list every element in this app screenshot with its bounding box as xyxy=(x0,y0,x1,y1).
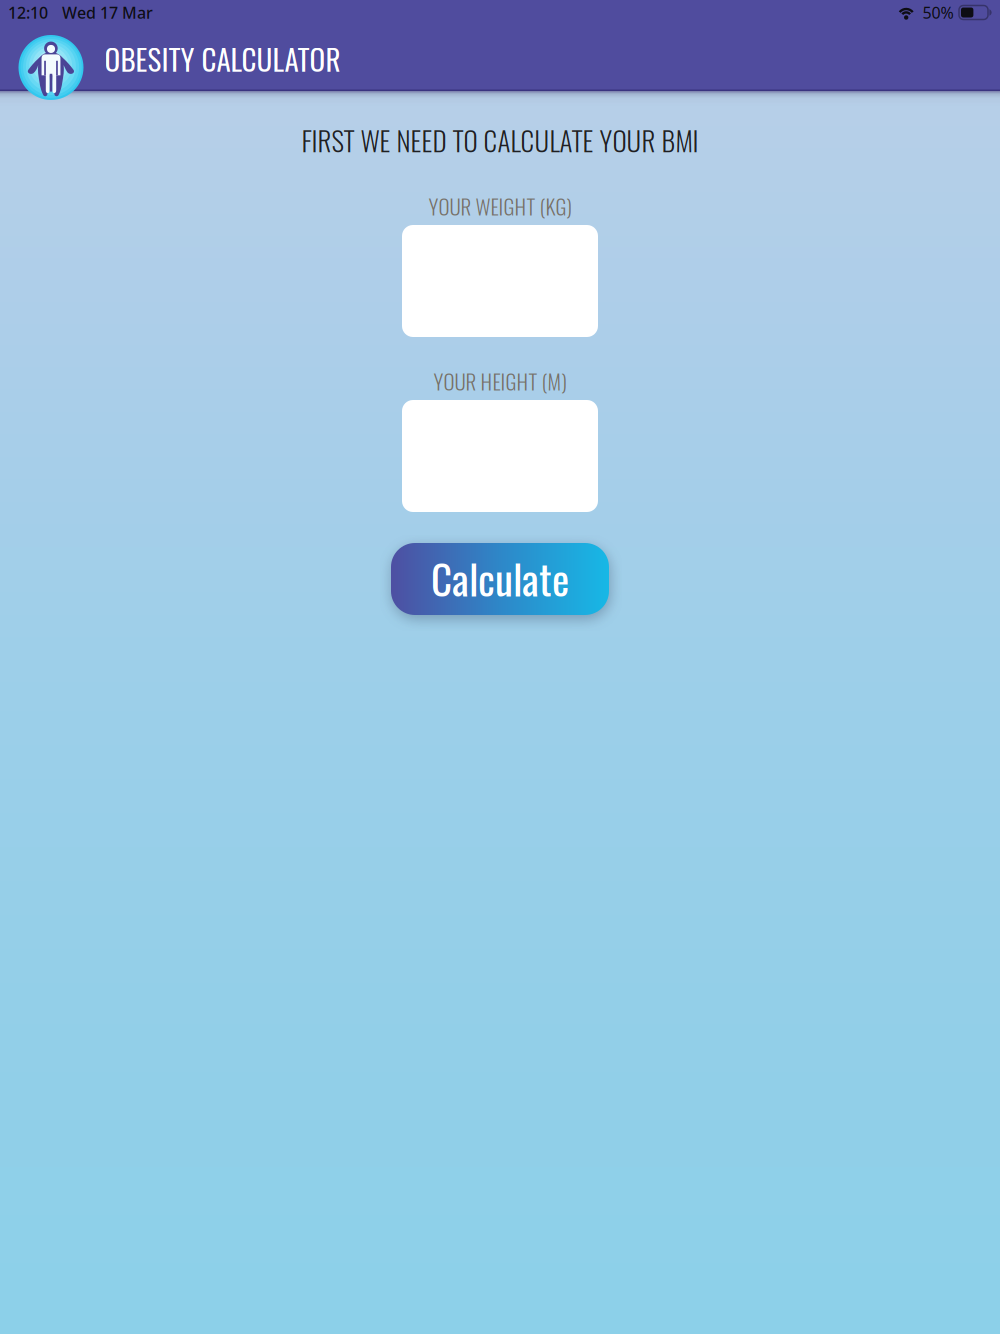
button[interactable]: YOUR HEIGHT (M) xyxy=(402,400,598,512)
button[interactable]: Obesity Calculator xyxy=(18,35,83,100)
staticText: YOUR HEIGHT (M) xyxy=(433,365,566,396)
staticText: OBESITY CALCULATOR xyxy=(104,37,340,80)
staticText: FIRST WE NEED TO CALCULATE YOUR BMI xyxy=(301,120,698,160)
staticText: Calculate xyxy=(431,548,569,608)
button[interactable]: YOUR WEIGHT (KG) xyxy=(402,225,598,337)
staticText: Wed 17 Mar xyxy=(62,2,153,23)
button[interactable]: Calculate xyxy=(391,543,609,615)
staticText: 50% xyxy=(922,2,953,23)
staticText: 12:10 xyxy=(8,2,48,23)
staticText: YOUR WEIGHT (KG) xyxy=(428,190,571,221)
